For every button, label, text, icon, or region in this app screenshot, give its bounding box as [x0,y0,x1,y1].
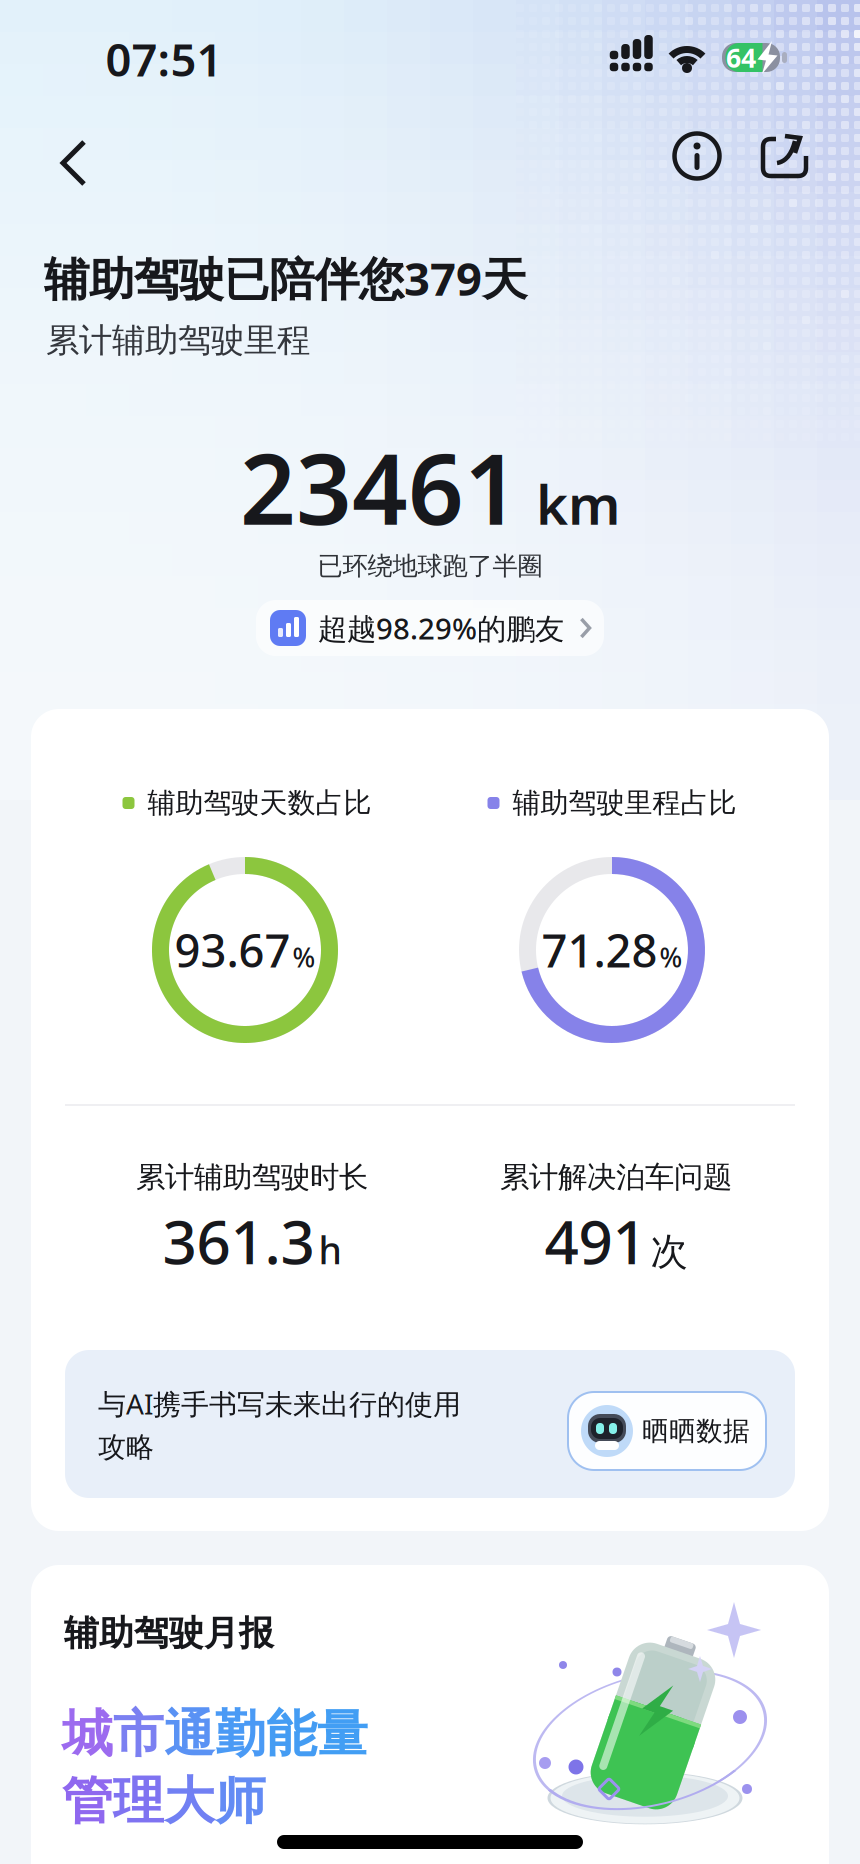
staticText: 93.67 [174,920,290,980]
staticText: % [292,939,315,975]
button[interactable]: Back [0,0,860,1864]
staticText: 累计辅助驾驶里程 [46,320,310,361]
staticText: 361.3 [162,1201,314,1281]
staticText: 师 [215,1770,266,1832]
staticText: 量 [317,1703,368,1765]
staticText: 超越98.29%的鹏友 [318,608,564,647]
button[interactable]: Info [0,0,860,1864]
staticText: 07:51 [105,29,222,89]
staticText: 勤 [215,1703,266,1765]
staticText: km [536,467,620,540]
staticText: 通 [164,1703,215,1765]
staticText: 64 [726,40,756,75]
button[interactable]: 辅助驾驶月报 [31,1565,829,1864]
staticText: 市 [113,1703,164,1765]
staticText: 能 [266,1703,317,1765]
staticText: 辅助驾驶天数占比 [147,786,371,820]
staticText: % [659,939,682,975]
staticText: 与AI携手书写未来出行的使用 [98,1385,461,1422]
staticText: 辅助驾驶里程占比 [512,786,736,820]
staticText: 71.28 [541,920,657,980]
button[interactable]: 超越98.29%的鹏友 [256,600,604,656]
staticText: 辅助驾驶已陪伴您379天 [44,248,527,308]
button[interactable]: Share [0,0,860,1864]
staticText: 已环绕地球跑了半圈 [317,550,542,581]
staticText: 23461 [240,422,520,552]
staticText: 管 [62,1770,113,1832]
staticText: 辅助驾驶月报 [64,1612,274,1655]
staticText: h [318,1225,341,1275]
button[interactable]: 晒晒数据 [568,1392,766,1470]
staticText: 晒晒数据 [642,1415,750,1447]
staticText: 累计解决泊车问题 [500,1159,732,1195]
staticText: 城 [62,1703,113,1765]
staticText: 攻略 [98,1430,154,1464]
staticText: 累计辅助驾驶时长 [136,1159,368,1195]
staticText: 次 [650,1229,687,1275]
staticText: 491 [544,1201,646,1281]
staticText: 理 [113,1770,164,1832]
staticText: 大 [164,1770,215,1832]
